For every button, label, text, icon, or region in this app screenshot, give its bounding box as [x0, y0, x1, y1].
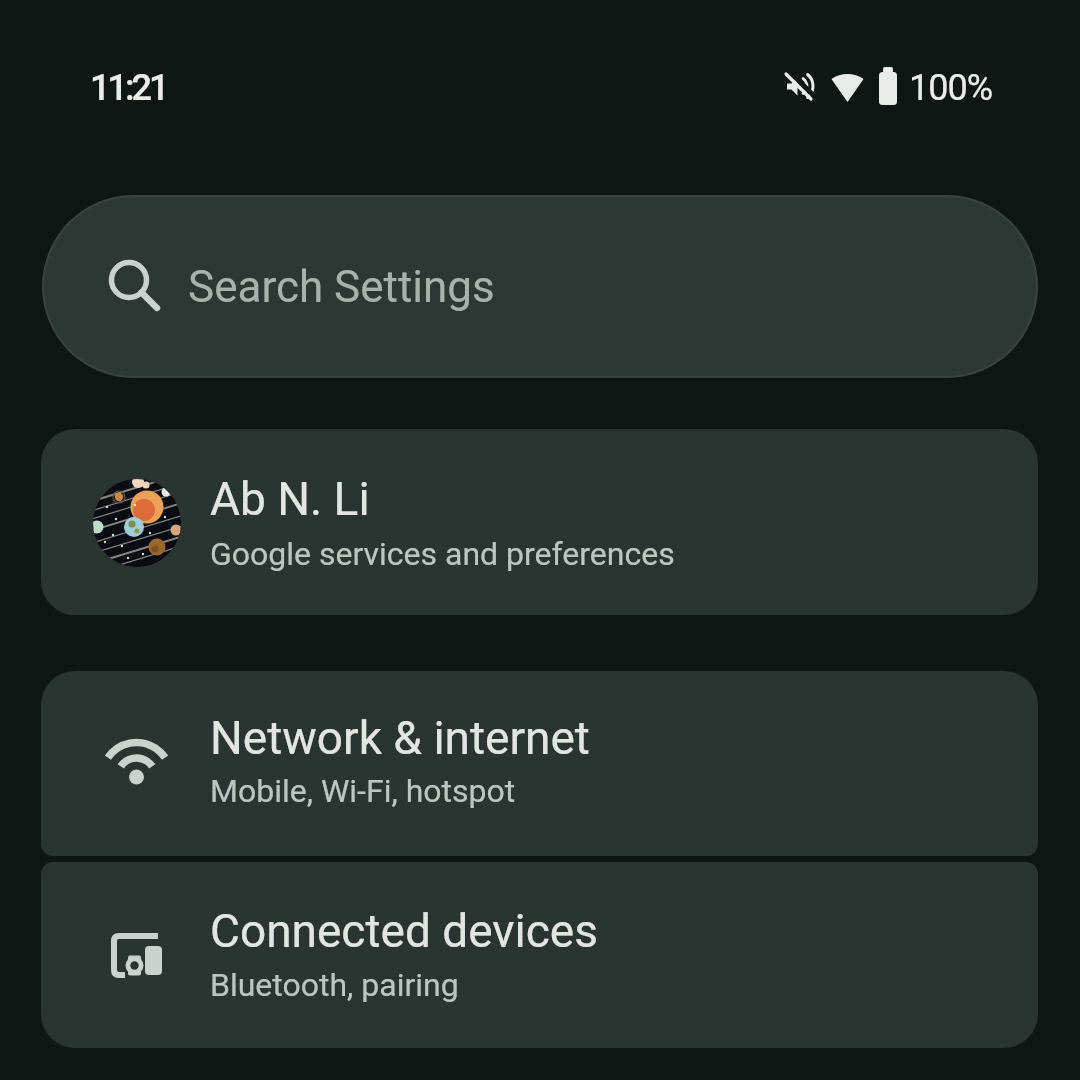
button[interactable]	[41, 429, 1038, 615]
button[interactable]	[42, 195, 1038, 378]
button[interactable]	[41, 671, 1038, 856]
staticText: 100%	[909, 67, 993, 109]
staticText: 11:21	[90, 67, 167, 109]
staticText: Google services and preferences	[210, 535, 675, 573]
staticText: Ab N. Li	[210, 472, 370, 526]
staticText: Bluetooth, pairing	[210, 966, 459, 1004]
staticText: Mobile, Wi-Fi, hotspot	[210, 772, 516, 810]
staticText: Network & internet	[210, 711, 590, 765]
button[interactable]	[41, 862, 1038, 1048]
staticText: Connected devices	[210, 904, 598, 958]
staticText: Search Settings	[188, 261, 495, 313]
